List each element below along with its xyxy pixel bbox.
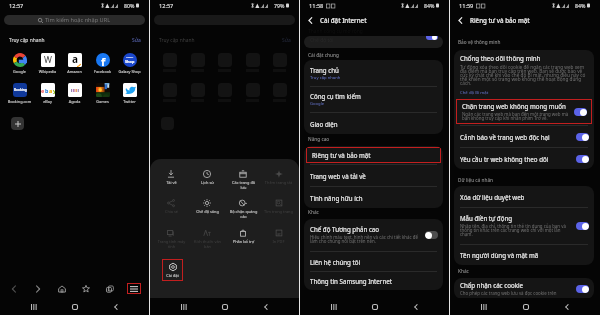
button[interactable]: Menu bbox=[127, 283, 141, 294]
staticText: Tìm trong trang bbox=[264, 209, 293, 214]
button[interactable]: Bộ chặn quảng cáo bbox=[225, 199, 261, 219]
staticText: Shop bbox=[125, 59, 135, 64]
staticText: Công cụ tìm kiếm bbox=[310, 92, 361, 100]
staticText: Mẫu điền tự động bbox=[460, 214, 513, 222]
staticText: 11:58 bbox=[309, 2, 324, 10]
button[interactable]: Tải về bbox=[153, 170, 189, 185]
button[interactable]: Games bbox=[89, 83, 116, 104]
button[interactable]: Giao diện bbox=[304, 113, 443, 134]
button[interactable]: Home bbox=[368, 300, 381, 313]
button[interactable]: Back bbox=[560, 300, 573, 313]
button[interactable]: Back bbox=[7, 283, 21, 294]
staticText: Chấp nhận các cookie bbox=[460, 281, 524, 289]
staticText: Tên người dùng và mật mã bbox=[460, 251, 539, 259]
button[interactable]: a bbox=[61, 53, 88, 74]
staticText: Phần bổ trợ bbox=[229, 239, 258, 244]
button[interactable]: Chế độ sáng bbox=[189, 199, 225, 214]
staticText: Cài đặt bbox=[162, 273, 183, 278]
button[interactable]: Phần bổ trợ bbox=[225, 229, 261, 244]
button[interactable]: Tabs bbox=[103, 283, 117, 294]
button[interactable]: On bbox=[576, 133, 589, 141]
button[interactable]: Chế độ Tương phản cao bbox=[304, 219, 443, 251]
staticText: Khác bbox=[308, 209, 319, 215]
button[interactable]: Agoda bbox=[61, 83, 88, 104]
button[interactable]: On bbox=[576, 285, 589, 293]
button[interactable]: Back bbox=[409, 300, 422, 313]
button[interactable]: Back bbox=[259, 300, 272, 313]
button[interactable]: Sửa bbox=[132, 37, 141, 44]
button[interactable]: Home bbox=[218, 300, 231, 313]
button[interactable]: Recents bbox=[177, 300, 190, 313]
button[interactable]: Back bbox=[454, 14, 466, 26]
button[interactable]: Forward bbox=[31, 283, 45, 294]
staticText: Kích thước văn bản bbox=[193, 239, 222, 249]
button[interactable]: Các trang đã lưu bbox=[225, 170, 261, 190]
staticText: Hiệu chỉnh màu text, hình nền và các chi… bbox=[310, 234, 422, 245]
button[interactable]: Home bbox=[55, 283, 69, 294]
button[interactable]: Recents bbox=[27, 300, 40, 313]
staticText: Chế độ Tương phản cao bbox=[310, 225, 380, 233]
button[interactable]: Thông tin Samsung Internet bbox=[304, 272, 443, 290]
button[interactable]: Home bbox=[68, 300, 81, 313]
button[interactable]: On bbox=[576, 222, 589, 230]
button[interactable]: Galaxy bbox=[116, 53, 143, 74]
button[interactable]: Chặn trang web không mong muốn bbox=[456, 99, 592, 124]
staticText: 12:57 bbox=[9, 2, 24, 10]
button[interactable]: On bbox=[576, 155, 589, 163]
button[interactable]: Google bbox=[6, 53, 33, 74]
button[interactable]: Thêm trang tắt bbox=[261, 170, 296, 185]
staticText: Facebook bbox=[89, 69, 116, 74]
button[interactable]: Recents bbox=[327, 300, 340, 313]
button[interactable]: e bbox=[34, 83, 61, 104]
button[interactable]: Off bbox=[425, 231, 438, 239]
button[interactable]: Add shortcut bbox=[11, 117, 24, 130]
button[interactable]: In PDF bbox=[261, 229, 296, 244]
button[interactable]: Kích thước văn bản bbox=[189, 229, 225, 249]
button[interactable]: Tên người dùng và mật mã bbox=[454, 245, 594, 265]
staticText: Thêm trang tắt bbox=[264, 180, 293, 185]
button[interactable]: Bookmarks bbox=[79, 283, 93, 294]
button[interactable]: Cảnh báo về trang web độc hại bbox=[454, 126, 594, 147]
button[interactable]: Trang web và tải về bbox=[304, 165, 443, 186]
staticText: Bảo vệ thông minh bbox=[458, 39, 501, 45]
staticText: Trang tính máy tính bbox=[157, 239, 186, 249]
button[interactable]: Trang chủ bbox=[304, 60, 443, 86]
button[interactable]: Yêu cầu tr web không theo dõi bbox=[454, 148, 594, 169]
button[interactable]: Chia sẻ bbox=[153, 199, 189, 214]
button[interactable]: Mẫu điền tự động bbox=[454, 208, 594, 244]
button[interactable]: Chấp nhận các cookie bbox=[454, 278, 594, 299]
button[interactable]: Tìm kiếm hoặc nhập URL bbox=[4, 15, 145, 25]
staticText: Cài đặt Internet bbox=[320, 16, 367, 24]
button[interactable]: Riêng tư và bảo mật bbox=[306, 147, 441, 163]
staticText: Tìm kiếm hoặc nhập URL bbox=[45, 16, 111, 24]
button[interactable]: Back bbox=[109, 300, 122, 313]
staticText: Galaxy bbox=[126, 56, 134, 59]
staticText: Chống theo dõi thông minh bbox=[460, 54, 541, 62]
button[interactable]: On bbox=[574, 108, 587, 116]
staticText: Bộ chặn quảng cáo bbox=[229, 209, 258, 219]
staticText: Riêng tư và bảo mật bbox=[312, 151, 371, 159]
staticText: Booking.com bbox=[6, 99, 33, 104]
button[interactable]: Back bbox=[304, 14, 316, 26]
button[interactable]: Booking bbox=[6, 83, 33, 104]
button[interactable]: Recents bbox=[477, 300, 490, 313]
staticText: 11:59 bbox=[459, 2, 474, 10]
staticText: Thông tin Samsung Internet bbox=[310, 277, 392, 285]
staticText: 84% bbox=[575, 2, 586, 9]
button[interactable]: W bbox=[34, 53, 61, 74]
staticText: Trang chủ bbox=[310, 66, 339, 74]
button[interactable]: Trang tính máy tính bbox=[153, 229, 189, 249]
button[interactable]: Liên hệ chúng tôi bbox=[304, 252, 443, 271]
button[interactable]: Lịch sử bbox=[189, 170, 225, 185]
button[interactable]: Tính năng hữu ích bbox=[304, 187, 443, 208]
button[interactable]: Công cụ tìm kiếm bbox=[304, 87, 443, 112]
button[interactable]: Xóa dữ liệu duyệt web bbox=[454, 186, 594, 207]
staticText: b bbox=[45, 87, 49, 94]
button[interactable]: f bbox=[89, 53, 116, 74]
button[interactable]: Tìm trong trang bbox=[261, 199, 296, 214]
button[interactable]: Twitter bbox=[116, 83, 143, 104]
button[interactable]: Chống theo dõi thông minh bbox=[454, 50, 594, 98]
button[interactable]: Home bbox=[519, 300, 532, 313]
button[interactable]: Cài đặt bbox=[162, 259, 183, 281]
